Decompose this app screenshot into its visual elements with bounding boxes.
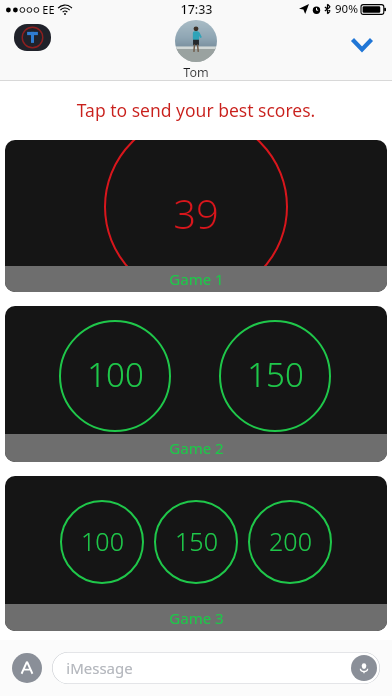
button[interactable]: Collapse [342, 24, 382, 64]
staticText: Game 1 [169, 269, 224, 289]
staticText: Tom [183, 64, 209, 81]
staticText: 90% [335, 1, 358, 17]
button[interactable]: Apps [12, 653, 42, 683]
staticText: iMessage [66, 658, 133, 678]
button[interactable]: 100 [5, 306, 387, 462]
button[interactable]: iMessage [52, 652, 380, 684]
button[interactable]: Tom [175, 20, 217, 81]
staticText: 200 [269, 524, 312, 558]
staticText: 39 [173, 186, 219, 240]
staticText: 17:33 [180, 1, 213, 18]
staticText: Game 3 [169, 608, 224, 628]
button[interactable]: Dictate [351, 655, 377, 681]
staticText: 100 [81, 524, 124, 558]
staticText: 100 [87, 352, 144, 397]
button[interactable]: App icon [14, 24, 51, 51]
staticText: EE [42, 2, 55, 17]
button[interactable]: 39 [5, 140, 387, 292]
staticText: Tap to send your best scores. [0, 98, 392, 122]
staticText: 150 [247, 352, 304, 397]
staticText: 150 [175, 524, 218, 558]
staticText: Game 2 [169, 438, 224, 458]
button[interactable]: 100 [5, 476, 387, 631]
